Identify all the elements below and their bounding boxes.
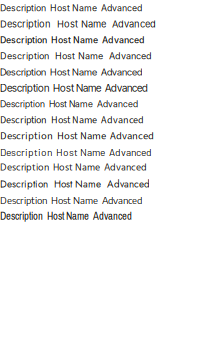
staticText: Description Host Name Advanced: [0, 113, 144, 127]
staticText: Description Host Name Advanced: [0, 82, 148, 94]
staticText: Description Host Name Advanced: [0, 194, 142, 206]
staticText: Description Host Name Advanced: [0, 209, 132, 223]
staticText: Description Host Name Advanced: [0, 18, 156, 30]
staticText: Description Host Name Advanced: [0, 66, 142, 78]
staticText: Description Host Name Advanced: [0, 160, 147, 176]
staticText: Description Host Name Advanced: [0, 35, 144, 45]
staticText: Description Host Name Advanced: [0, 3, 142, 13]
staticText: Description Host Name Advanced: [0, 128, 154, 144]
staticText: Description Host Name Advanced: [0, 98, 138, 109]
staticText: Description Host Name Advanced: [0, 146, 152, 158]
staticText: Description Host Name Advanced: [0, 50, 152, 61]
staticText: Description Host Name Advanced: [0, 177, 150, 191]
